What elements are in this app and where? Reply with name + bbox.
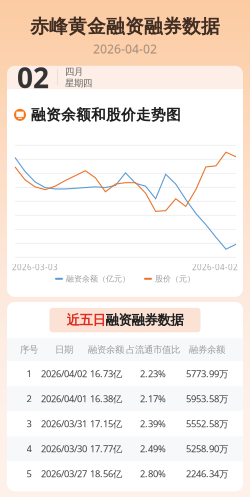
staticText: 2.17% xyxy=(140,392,166,405)
staticText: 融资余额和股价走势图 xyxy=(31,106,181,124)
staticText: 2.39% xyxy=(140,417,166,430)
staticText: 2026-04-02 xyxy=(192,262,238,272)
staticText: 2026/03/30 xyxy=(41,442,87,455)
staticText: 日期 xyxy=(55,344,73,355)
staticText: 融券余额 xyxy=(189,344,225,355)
staticText: 02 xyxy=(17,59,49,96)
staticText: 16.73亿 xyxy=(90,367,122,380)
staticText: 4 xyxy=(26,442,31,455)
staticText: 5552.58万 xyxy=(186,417,228,430)
staticText: 赤峰黄金融资融券数据 xyxy=(30,15,220,38)
staticText: 17.77亿 xyxy=(90,442,122,455)
staticText: 2026-04-02 xyxy=(93,41,157,57)
staticText: 2.49% xyxy=(140,442,166,455)
staticText: 1 xyxy=(26,367,31,380)
staticText: 融资融券数据 xyxy=(105,312,183,328)
staticText: 股价（元） xyxy=(155,274,195,284)
staticText: 5258.90万 xyxy=(186,442,228,455)
staticText: 2026/03/27 xyxy=(41,467,87,480)
staticText: 四月 xyxy=(65,66,83,77)
staticText: 2026-03-03 xyxy=(12,262,58,272)
staticText: 16.38亿 xyxy=(90,392,122,405)
staticText: 2 xyxy=(26,392,31,405)
staticText: 3 xyxy=(26,417,31,430)
staticText: 2.23% xyxy=(140,367,166,380)
staticText: 融资余额 xyxy=(88,344,124,355)
staticText: 5 xyxy=(26,467,31,480)
staticText: 融资余额（亿元） xyxy=(66,274,130,284)
staticText: 近五日 xyxy=(66,312,105,328)
staticText: 占流通市值比 xyxy=(126,344,180,355)
staticText: 5773.99万 xyxy=(186,367,228,380)
staticText: 5953.58万 xyxy=(186,392,228,405)
staticText: 17.15亿 xyxy=(90,417,122,430)
staticText: 2026/04/01 xyxy=(41,392,87,405)
staticText: 星期四 xyxy=(65,77,92,89)
staticText: 2026/04/02 xyxy=(41,367,87,380)
staticText: 2026/03/31 xyxy=(41,417,87,430)
staticText: 2.80% xyxy=(140,467,166,480)
staticText: 2246.34万 xyxy=(186,467,228,480)
staticText: 18.56亿 xyxy=(90,467,122,480)
staticText: 序号 xyxy=(20,344,38,355)
